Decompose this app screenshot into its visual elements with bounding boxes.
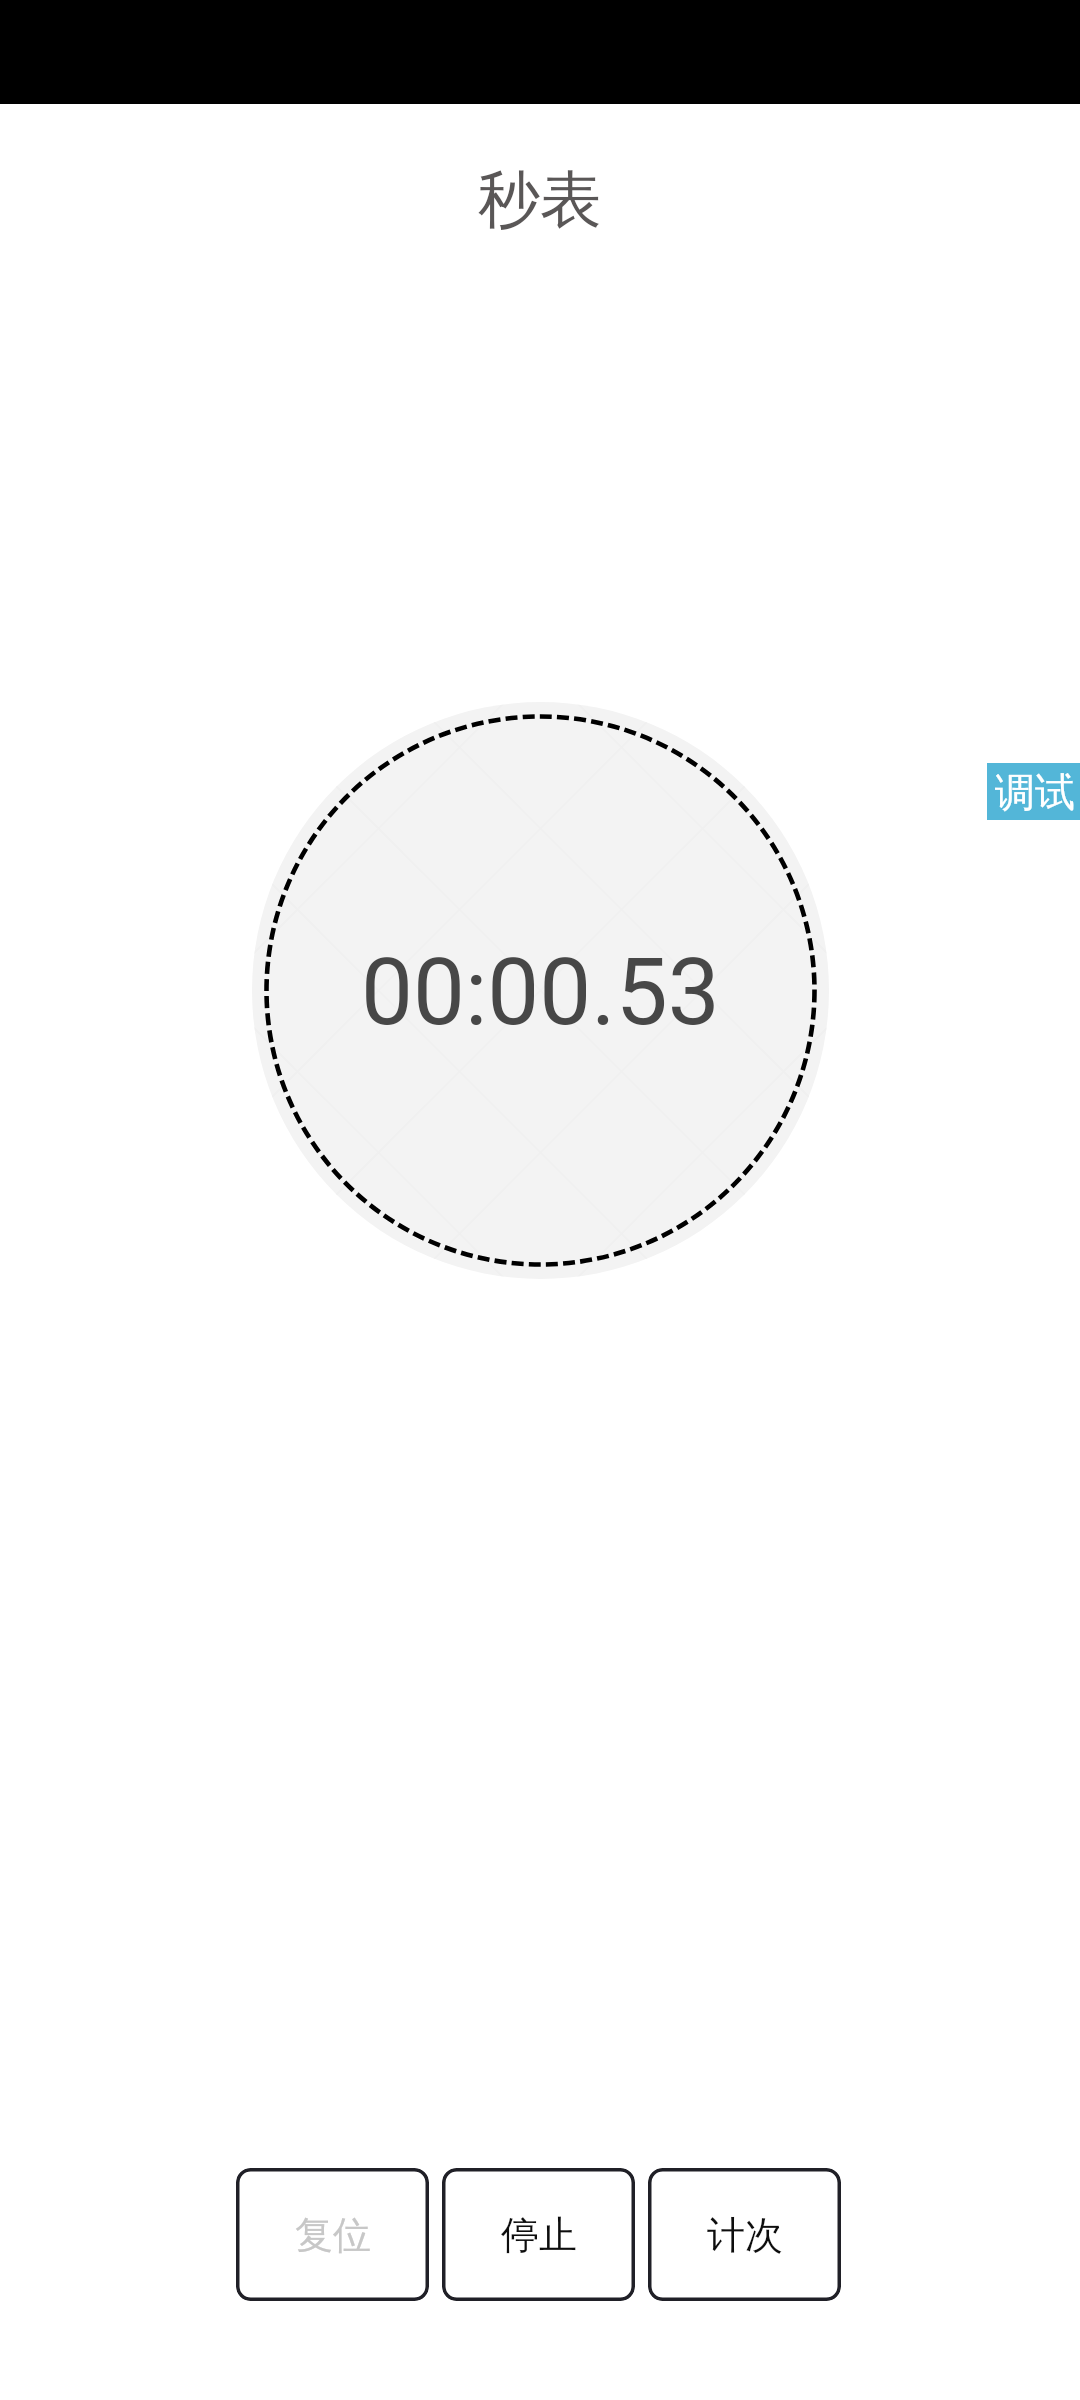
staticText: 停止 bbox=[501, 2211, 577, 2259]
button[interactable]: 复位 bbox=[236, 2168, 429, 2301]
button[interactable]: 计次 bbox=[648, 2168, 841, 2301]
button[interactable]: 00:00.53 bbox=[252, 702, 829, 1279]
staticText: 秒表 bbox=[478, 161, 602, 239]
button[interactable]: 停止 bbox=[442, 2168, 635, 2301]
staticText: 00:00.53 bbox=[361, 938, 720, 1046]
staticText: 计次 bbox=[707, 2211, 783, 2259]
button[interactable]: 调试 bbox=[987, 763, 1080, 820]
staticText: 复位 bbox=[295, 2211, 371, 2259]
staticText: 调试 bbox=[995, 767, 1075, 817]
